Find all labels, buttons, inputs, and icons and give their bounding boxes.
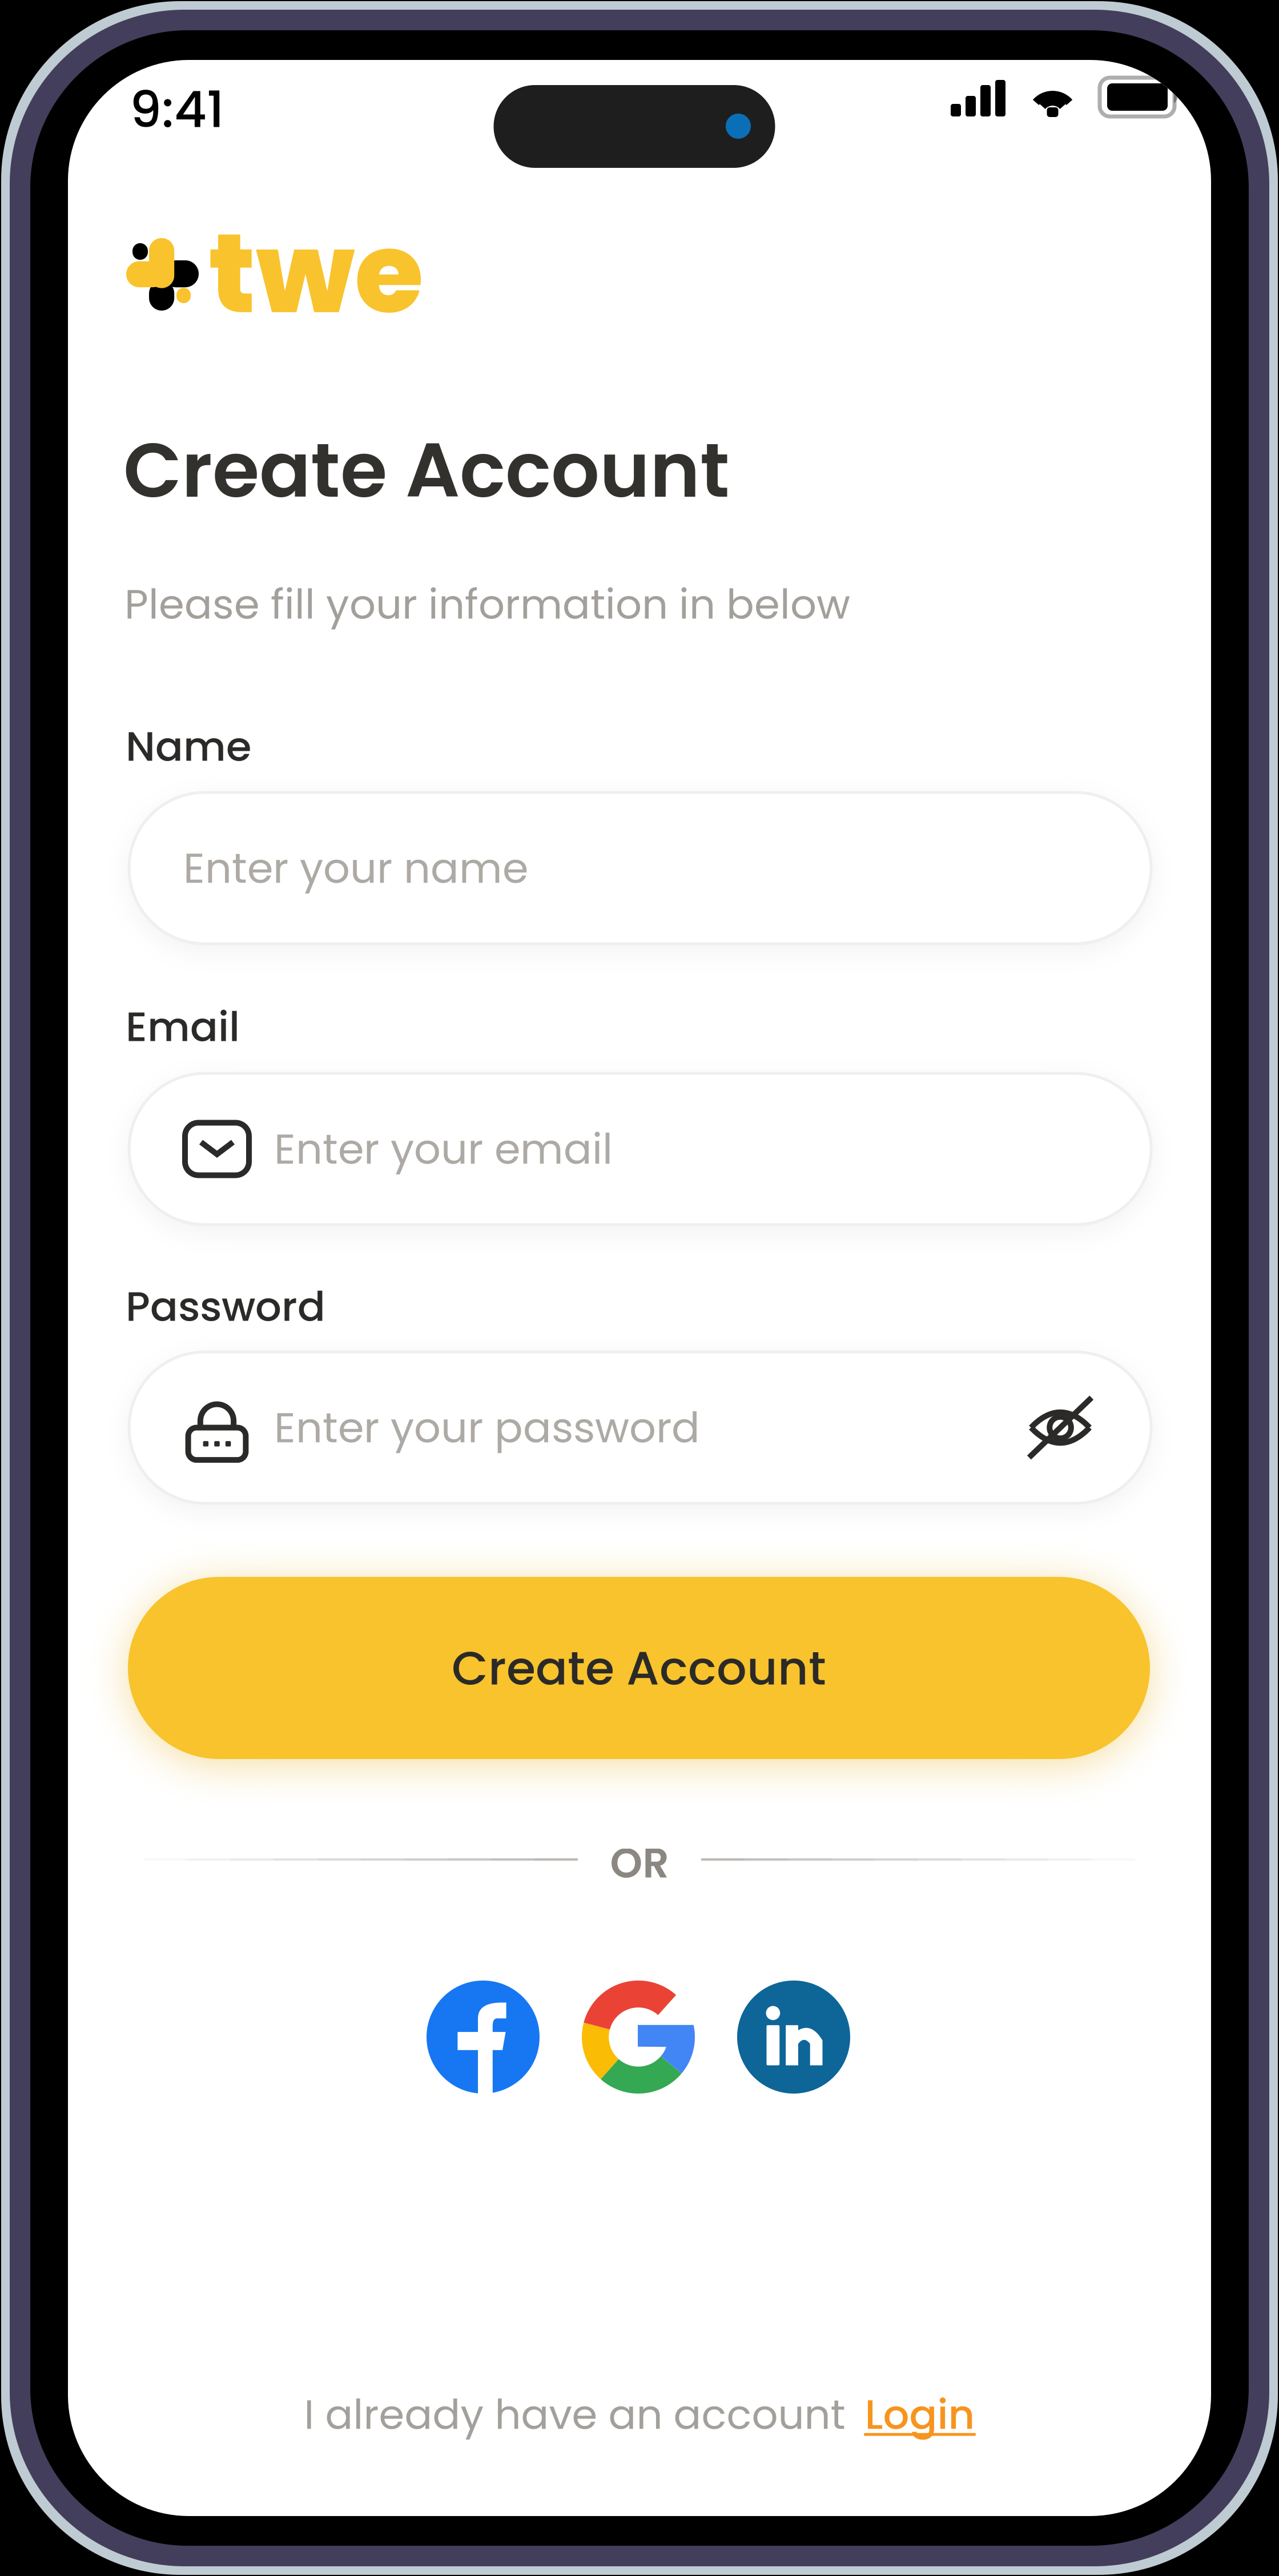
button[interactable]: Sign up with LinkedIn (737, 1981, 850, 2094)
button[interactable]: Create Account (128, 1577, 1150, 1759)
staticText: I already have an account (304, 2386, 845, 2443)
staticText: Password (126, 1278, 325, 1335)
staticText: Enter your name (183, 839, 528, 897)
staticText: twe (208, 195, 424, 351)
staticText: 9:41 (130, 74, 224, 145)
button[interactable]: Sign up with Google (582, 1981, 695, 2094)
button[interactable]: Sign up with Facebook (427, 1981, 540, 2094)
staticText: Email (126, 998, 240, 1056)
staticText: Login (865, 2386, 975, 2443)
staticText: Create Account (123, 417, 730, 523)
staticText: OR (610, 1834, 669, 1892)
staticText: Create Account (452, 1635, 826, 1701)
staticText: Name (126, 718, 251, 775)
staticText: Please fill your information in below (124, 575, 850, 633)
button[interactable]: Show password (1028, 1395, 1093, 1460)
button[interactable]: I already have an account (68, 2380, 1211, 2449)
staticText: Enter your email (274, 1120, 613, 1178)
staticText: Enter your password (274, 1398, 700, 1457)
